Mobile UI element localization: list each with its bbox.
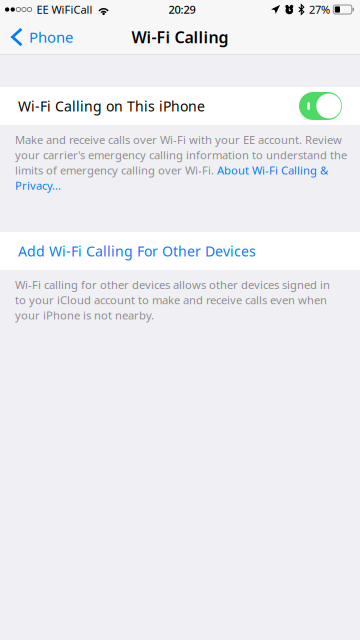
staticText: Phone (29, 27, 73, 47)
staticText: limits of emergency calling over Wi-Fi. … (15, 162, 328, 178)
staticText: Wi-Fi Calling on This iPhone (18, 96, 205, 116)
staticText: EE WiFiCall (36, 2, 92, 17)
staticText: Wi-Fi Calling (131, 26, 228, 48)
button[interactable]: Wi-Fi Calling on This iPhone (299, 92, 342, 120)
staticText: Privacy... (15, 178, 61, 193)
staticText: your carrier's emergency calling informa… (15, 147, 347, 163)
staticText: your iPhone is not nearby. (15, 307, 154, 323)
staticText: 27% (309, 2, 330, 17)
staticText: Add Wi-Fi Calling For Other Devices (18, 241, 256, 261)
staticText: to your iCloud account to make and recei… (15, 292, 327, 308)
button[interactable]: Add Wi-Fi Calling For Other Devices (0, 232, 360, 270)
staticText: Wi-Fi calling for other devices allows o… (15, 277, 330, 292)
staticText: Make and receive calls over Wi-Fi with y… (15, 132, 342, 147)
button[interactable]: Wi-Fi Calling on This iPhone (0, 87, 360, 125)
button[interactable]: Phone (0, 19, 81, 55)
staticText: 20:29 (168, 2, 195, 17)
